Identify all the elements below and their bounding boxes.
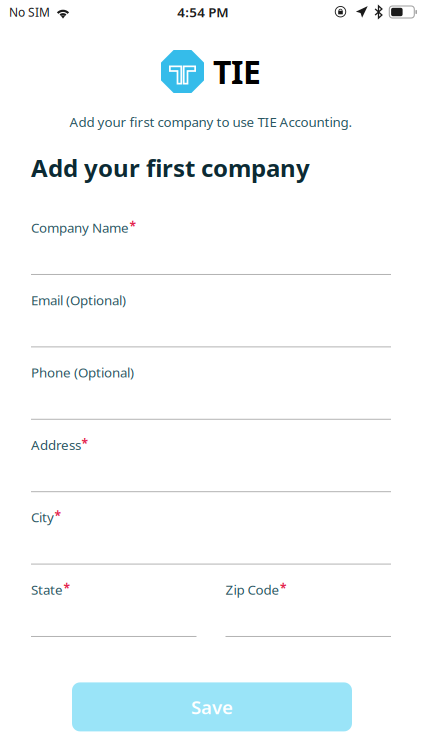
staticText: City (31, 508, 54, 526)
staticText: * (129, 218, 136, 234)
staticText: Company Name (31, 219, 129, 236)
staticText: Phone (Optional) (31, 363, 134, 381)
staticText: Email (Optional) (31, 291, 126, 309)
staticText: * (63, 580, 70, 596)
button[interactable]: Email (Optional) (31, 286, 391, 358)
staticText: * (54, 508, 61, 524)
button[interactable]: State (31, 576, 196, 648)
button[interactable]: Save (72, 682, 352, 731)
staticText: * (81, 435, 88, 451)
button[interactable]: City (31, 503, 391, 576)
staticText: State (31, 581, 63, 598)
staticText: Add your first company (31, 152, 310, 184)
staticText: Save (191, 694, 233, 719)
staticText: Add your first company to use TIE Accoun… (69, 113, 352, 131)
button[interactable]: Phone (Optional) (31, 358, 391, 431)
staticText: * (280, 580, 287, 596)
staticText: 4:54 PM (177, 3, 228, 21)
button[interactable]: Address (31, 431, 391, 503)
staticText: Address (31, 436, 81, 454)
button[interactable]: Zip Code (225, 576, 391, 648)
staticText: TIE (213, 50, 261, 93)
button[interactable]: Company Name (31, 214, 391, 286)
staticText: Zip Code (225, 581, 279, 598)
staticText: No SIM (9, 4, 50, 20)
